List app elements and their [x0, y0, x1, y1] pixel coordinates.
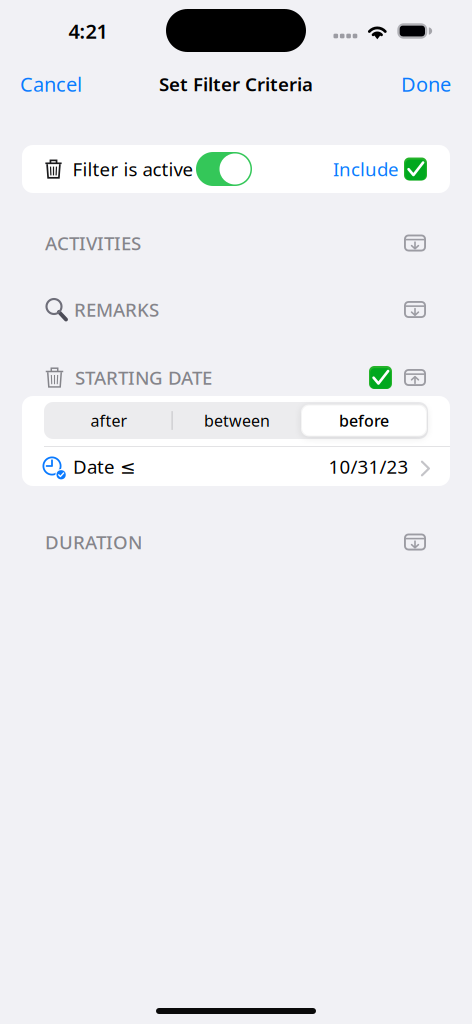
- button[interactable]: Expand DURATION: [404, 525, 426, 558]
- staticText: REMARKS: [74, 297, 159, 322]
- staticText: DURATION: [45, 530, 142, 554]
- button[interactable]: Include STARTING DATE: [369, 361, 404, 394]
- staticText: Date ≤: [73, 454, 136, 479]
- button[interactable]: Collapse STARTING DATE: [404, 361, 426, 394]
- staticText: Filter is active: [72, 157, 193, 181]
- staticText: after: [90, 410, 127, 431]
- staticText: ACTIVITIES: [45, 231, 141, 255]
- button[interactable]: Done: [393, 62, 459, 106]
- staticText: STARTING DATE: [75, 365, 212, 390]
- button[interactable]: after: [45, 402, 173, 439]
- staticText: Include: [333, 157, 399, 181]
- staticText: between: [204, 410, 270, 431]
- staticText: 4:21: [68, 18, 107, 44]
- staticText: Set Filter Criteria: [159, 72, 313, 96]
- button[interactable]: Date ≤: [22, 447, 450, 486]
- button[interactable]: Expand REMARKS: [404, 293, 426, 326]
- staticText: Cancel: [20, 71, 82, 97]
- button[interactable]: between: [173, 402, 301, 439]
- button[interactable]: Expand ACTIVITIES: [404, 226, 426, 259]
- button[interactable]: before: [301, 404, 427, 436]
- button[interactable]: Cancel: [12, 62, 90, 106]
- staticText: before: [339, 410, 389, 431]
- button[interactable]: Include: [333, 157, 427, 181]
- button[interactable]: Filter is active: [196, 152, 252, 186]
- staticText: Done: [401, 71, 451, 97]
- staticText: 10/31/23: [328, 454, 408, 479]
